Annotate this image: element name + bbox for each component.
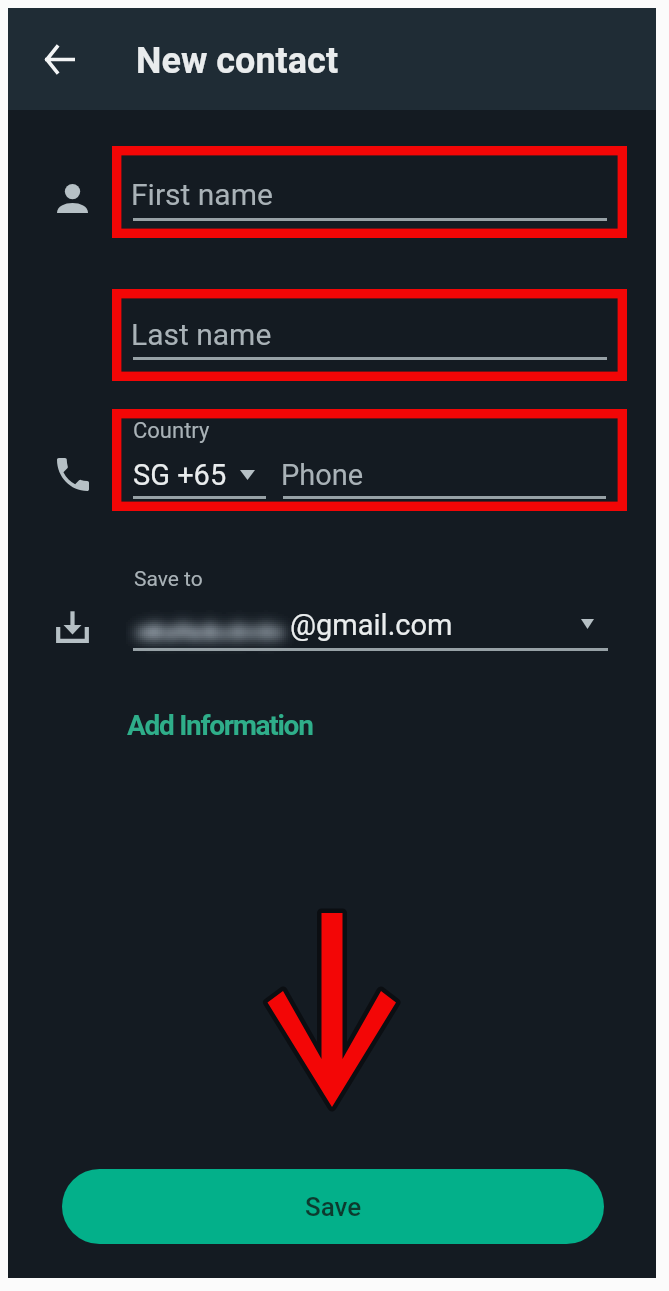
- staticText: First name: [131, 177, 273, 212]
- staticText: Country: [133, 418, 210, 444]
- staticText: SG +65: [133, 458, 227, 492]
- button[interactable]: Save: [62, 1169, 604, 1244]
- staticText: Add Information: [127, 709, 313, 742]
- staticText: New contact: [136, 40, 339, 82]
- button[interactable]: Add Information: [117, 699, 323, 752]
- staticText: Phone: [281, 458, 364, 492]
- button[interactable]: Back: [33, 32, 87, 86]
- staticText: Last name: [131, 317, 272, 352]
- staticText: Save: [305, 1192, 362, 1222]
- staticText: Save to: [134, 567, 203, 592]
- staticText: @gmail.com: [290, 608, 453, 642]
